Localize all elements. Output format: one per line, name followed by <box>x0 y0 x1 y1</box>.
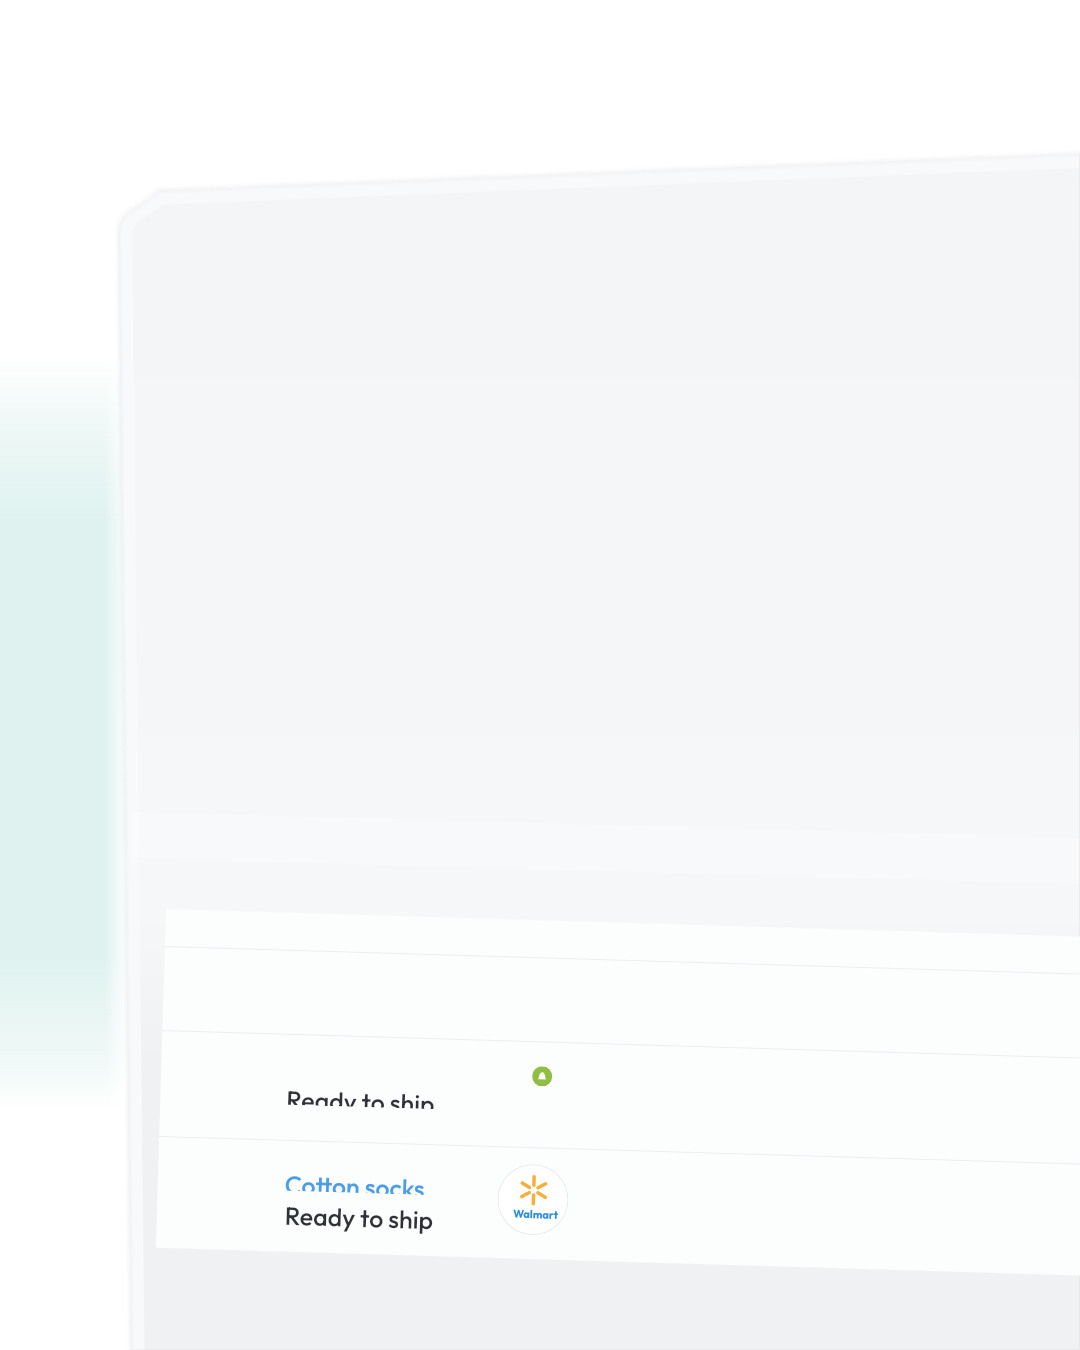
button[interactable]: Walmart <box>496 1163 569 1236</box>
button[interactable]: Ready to ship <box>159 1031 1080 1165</box>
staticText: Ready to ship <box>286 1084 436 1109</box>
button[interactable]: Verified seller <box>532 1066 552 1087</box>
button[interactable]: Cotton socks <box>156 1137 1080 1276</box>
staticText: Walmart <box>513 1207 559 1222</box>
staticText: Ready to ship <box>284 1200 434 1236</box>
staticText: Cotton socks <box>285 1169 425 1195</box>
